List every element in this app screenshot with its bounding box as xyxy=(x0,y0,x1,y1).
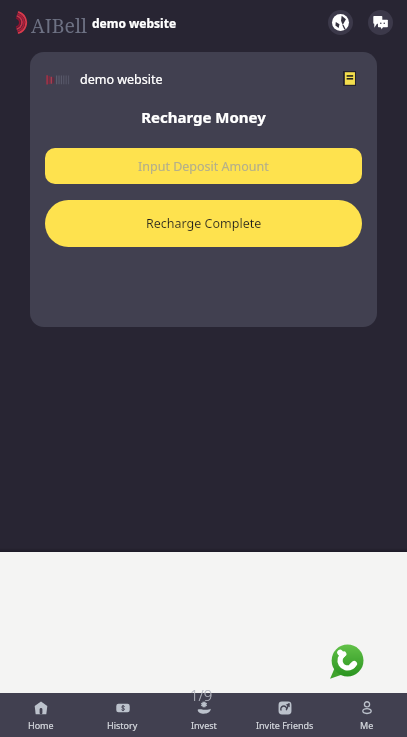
staticText: demo website xyxy=(80,71,163,88)
staticText: AJBell xyxy=(31,12,87,33)
button[interactable]: Invest xyxy=(163,693,244,737)
button[interactable]: Customer service xyxy=(368,10,393,35)
staticText: Input Deposit Amount xyxy=(138,158,269,175)
staticText: 1/9 xyxy=(190,685,213,705)
button[interactable]: Input Deposit Amount xyxy=(45,148,362,184)
button[interactable]: History xyxy=(82,693,163,737)
button[interactable]: Home xyxy=(0,693,81,737)
button[interactable]: Me xyxy=(326,693,407,737)
staticText: Recharge Money xyxy=(30,107,377,127)
staticText: Invest xyxy=(191,719,217,731)
button[interactable]: Language xyxy=(328,10,353,35)
button[interactable]: WhatsApp xyxy=(329,644,364,679)
button[interactable]: Records xyxy=(343,71,356,86)
button[interactable]: Recharge Complete xyxy=(45,200,362,247)
staticText: Invite Friends xyxy=(256,719,314,731)
staticText: Recharge Complete xyxy=(146,215,262,232)
button[interactable]: Invite Friends xyxy=(244,693,325,737)
staticText: Home xyxy=(28,719,54,731)
staticText: demo website xyxy=(92,15,177,31)
staticText: Me xyxy=(360,719,374,731)
staticText: History xyxy=(107,719,138,731)
